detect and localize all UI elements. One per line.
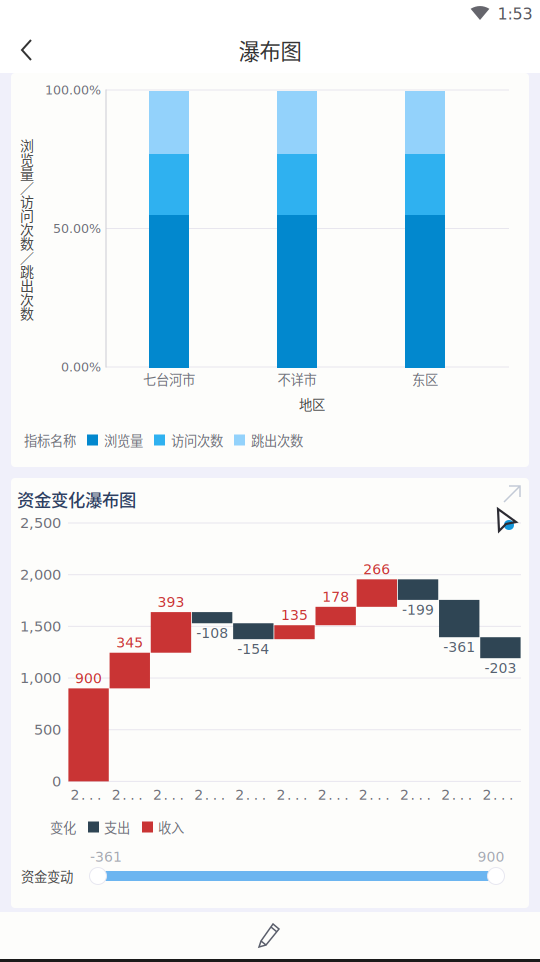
- staticText: 数: [20, 233, 34, 253]
- staticText: 资金变化瀑布图: [17, 486, 136, 512]
- staticText: .: [97, 787, 101, 803]
- staticText: .: [122, 787, 126, 803]
- staticText: 支出: [104, 817, 130, 837]
- staticText: -154: [237, 641, 269, 657]
- staticText: .: [418, 787, 422, 803]
- staticText: 2: [441, 787, 450, 803]
- staticText: -361: [90, 849, 122, 865]
- staticText: 出: [20, 275, 34, 295]
- staticText: .: [369, 787, 373, 803]
- button[interactable]: Edit: [240, 912, 300, 960]
- staticText: .: [385, 787, 389, 803]
- staticText: .: [295, 787, 299, 803]
- staticText: .: [213, 787, 217, 803]
- staticText: .: [246, 787, 250, 803]
- staticText: 1,500: [20, 618, 61, 635]
- staticText: .: [336, 787, 340, 803]
- staticText: .: [287, 787, 291, 803]
- staticText: 次: [20, 219, 34, 239]
- staticText: .: [377, 787, 381, 803]
- staticText: 2: [194, 787, 203, 803]
- staticText: .: [468, 787, 472, 803]
- staticText: 2: [112, 787, 121, 803]
- staticText: .: [171, 787, 175, 803]
- staticText: 0.00%: [61, 360, 101, 374]
- staticText: 1:53: [497, 5, 532, 23]
- staticText: 0: [52, 773, 61, 790]
- staticText: .: [138, 787, 142, 803]
- staticText: 问: [20, 205, 34, 225]
- staticText: -108: [196, 625, 228, 641]
- staticText: 收入: [158, 817, 184, 837]
- staticText: 2: [235, 787, 244, 803]
- staticText: .: [130, 787, 134, 803]
- staticText: 浏: [20, 135, 34, 155]
- staticText: 345: [116, 635, 143, 651]
- staticText: .: [205, 787, 209, 803]
- staticText: 266: [363, 561, 390, 577]
- staticText: 七台河市: [143, 369, 195, 389]
- staticText: 数: [20, 303, 34, 323]
- staticText: 900: [75, 670, 102, 686]
- staticText: -199: [402, 602, 434, 618]
- staticText: 访问次数: [171, 430, 223, 450]
- staticText: 2: [400, 787, 409, 803]
- staticText: .: [509, 787, 513, 803]
- staticText: .: [303, 787, 307, 803]
- staticText: 变化: [50, 817, 76, 837]
- staticText: .: [81, 787, 85, 803]
- staticText: 2,500: [20, 514, 61, 532]
- staticText: 指标名称: [24, 430, 76, 450]
- staticText: 2: [153, 787, 162, 803]
- staticText: .: [410, 787, 414, 803]
- staticText: 50.00%: [53, 221, 101, 236]
- staticText: 135: [281, 607, 308, 623]
- staticText: -203: [484, 660, 516, 676]
- staticText: 不详市: [277, 369, 316, 389]
- staticText: 览: [20, 149, 34, 169]
- staticText: 393: [157, 594, 184, 610]
- staticText: .: [254, 787, 258, 803]
- staticText: .: [262, 787, 266, 803]
- staticText: 178: [322, 589, 349, 605]
- staticText: ／: [20, 177, 34, 197]
- staticText: 跳: [20, 261, 34, 281]
- staticText: -361: [443, 639, 475, 655]
- staticText: .: [501, 787, 505, 803]
- staticText: .: [221, 787, 225, 803]
- staticText: 2,000: [20, 566, 61, 583]
- staticText: .: [344, 787, 348, 803]
- staticText: 2: [482, 787, 491, 803]
- staticText: .: [179, 787, 183, 803]
- staticText: .: [452, 787, 456, 803]
- staticText: 100.00%: [45, 83, 101, 97]
- staticText: 2: [71, 787, 80, 803]
- staticText: .: [89, 787, 93, 803]
- staticText: 访: [20, 191, 34, 211]
- staticText: 浏览量: [104, 430, 143, 450]
- staticText: 900: [477, 849, 504, 865]
- button[interactable]: Back: [3, 27, 51, 72]
- staticText: 2: [276, 787, 285, 803]
- staticText: 瀑布图: [238, 35, 301, 65]
- staticText: 跳出次数: [251, 430, 303, 450]
- staticText: .: [328, 787, 332, 803]
- staticText: 500: [34, 721, 61, 738]
- button[interactable]: Expand chart: [500, 482, 526, 508]
- staticText: .: [426, 787, 430, 803]
- staticText: 东区: [412, 369, 438, 389]
- staticText: ／: [20, 247, 34, 267]
- staticText: 量: [20, 163, 34, 183]
- staticText: .: [493, 787, 497, 803]
- staticText: 资金变动: [21, 866, 73, 886]
- staticText: 次: [20, 289, 34, 309]
- staticText: 地区: [299, 394, 325, 414]
- staticText: 2: [318, 787, 327, 803]
- staticText: .: [460, 787, 464, 803]
- staticText: 2: [359, 787, 368, 803]
- staticText: .: [163, 787, 167, 803]
- staticText: 1,000: [20, 669, 61, 687]
